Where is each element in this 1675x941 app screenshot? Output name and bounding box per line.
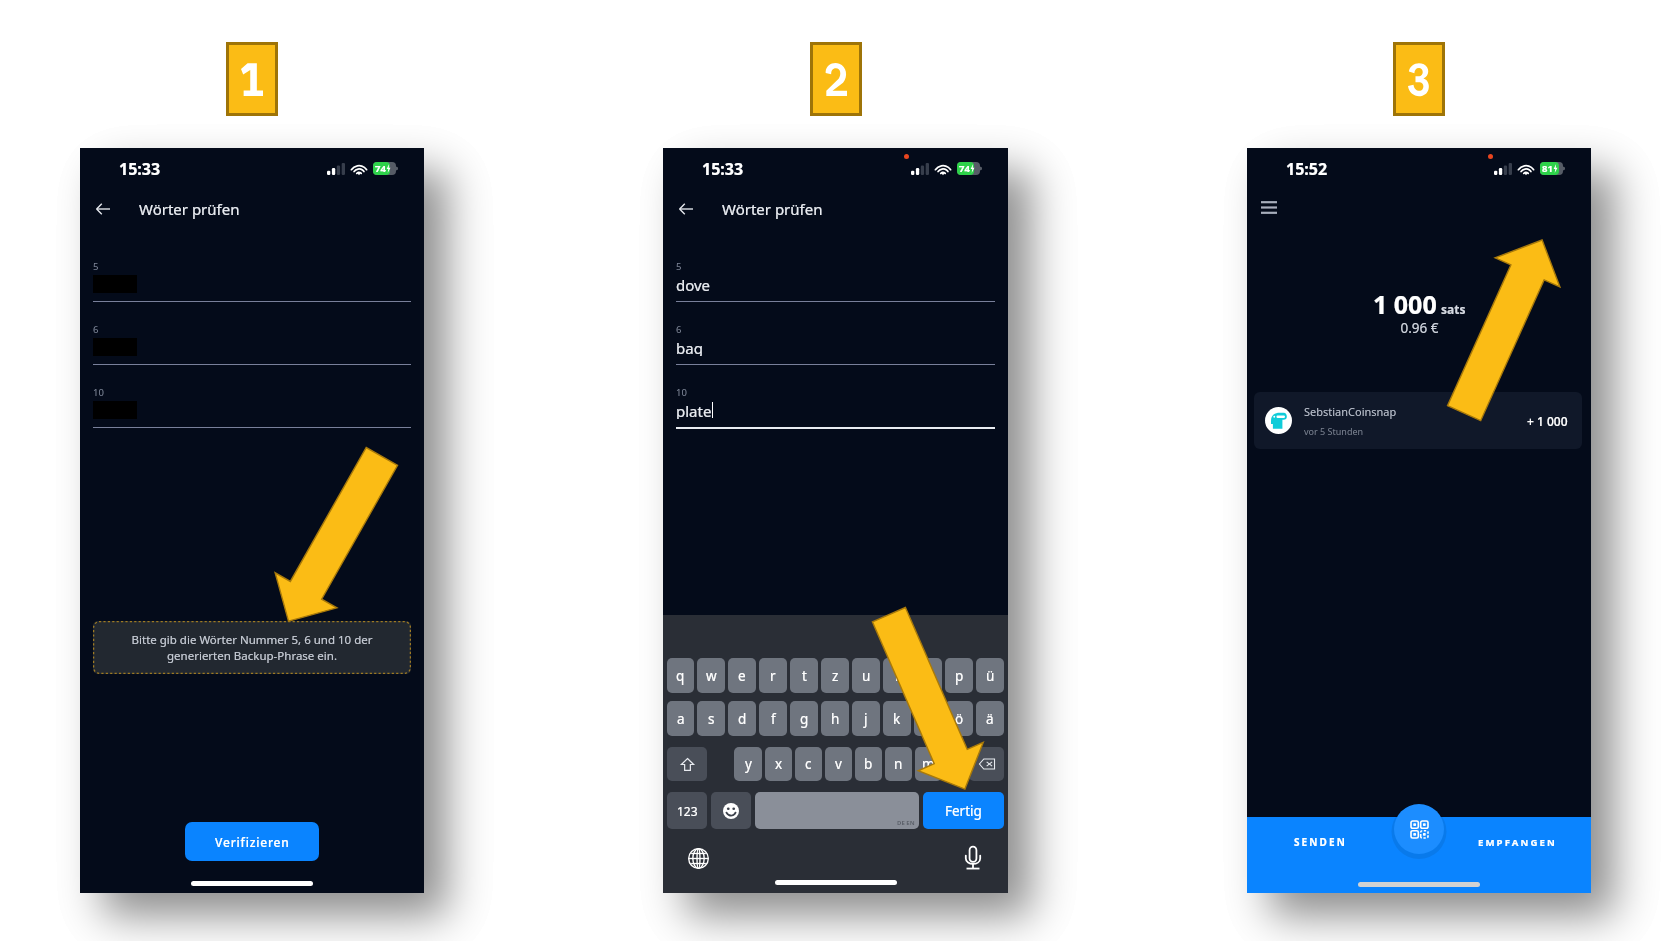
staticText: 6 [676, 323, 682, 335]
button[interactable]: t [790, 658, 818, 693]
staticText: Bitte gib die Wörter Nummer 5, 6 und 10 … [93, 632, 411, 663]
staticText: DE EN [897, 819, 915, 827]
button[interactable]: k [883, 701, 911, 736]
staticText: r [770, 667, 776, 685]
staticText: f [771, 710, 776, 728]
staticText: sats [1441, 301, 1466, 317]
staticText: + 1 000 [1527, 413, 1568, 429]
button[interactable]: Change language [685, 845, 711, 871]
staticText: SebstianCoinsnap [1304, 404, 1397, 419]
button[interactable]: f [759, 701, 787, 736]
button[interactable]: w [697, 658, 725, 693]
staticText: q [676, 667, 685, 685]
button[interactable]: u [852, 658, 880, 693]
button[interactable]: Menu [1254, 192, 1284, 222]
button[interactable]: Fertig [923, 792, 1004, 829]
staticText: bag [676, 338, 703, 356]
button[interactable]: ö [945, 701, 973, 736]
staticText: d [738, 710, 747, 728]
button[interactable]: Verifizieren [185, 822, 319, 861]
button[interactable]: Emoji [711, 792, 751, 829]
button[interactable]: x [765, 747, 792, 781]
button[interactable]: o [914, 658, 942, 693]
staticText: SENDEN [1294, 835, 1347, 849]
button[interactable]: l [914, 701, 942, 736]
staticText: u [862, 667, 871, 685]
staticText: g [800, 710, 809, 728]
button[interactable]: e [728, 658, 756, 693]
staticText: plate [676, 401, 712, 419]
staticText: 6 [93, 323, 99, 335]
staticText: EMPFANGEN [1478, 836, 1557, 849]
staticText: Fertig [945, 802, 982, 820]
button[interactable]: q [667, 658, 694, 693]
staticText: Verifizieren [215, 834, 290, 850]
staticText: 123 [677, 803, 698, 819]
staticText: b [864, 755, 873, 773]
staticText: dove [676, 275, 711, 293]
staticText: Wörter prüfen [722, 199, 823, 219]
staticText: v [835, 755, 842, 773]
staticText: ö [955, 710, 964, 728]
staticText: w [706, 667, 717, 685]
staticText: t [802, 667, 807, 685]
staticText: 10 [676, 386, 687, 398]
staticText: ü [986, 667, 995, 685]
staticText: m [922, 755, 935, 773]
button[interactable]: r [759, 658, 787, 693]
button[interactable]: y [734, 747, 762, 781]
button[interactable]: m [915, 747, 942, 781]
staticText: s [708, 710, 715, 728]
staticText: 15:33 [702, 158, 744, 180]
button[interactable]: j [852, 701, 880, 736]
button[interactable]: v [825, 747, 852, 781]
staticText: j [864, 710, 868, 728]
staticText: 74 [959, 162, 970, 175]
button[interactable]: Space [755, 792, 919, 829]
staticText: Wörter prüfen [139, 199, 240, 219]
button[interactable]: s [697, 701, 725, 736]
staticText: ä [986, 710, 994, 728]
button[interactable]: n [885, 747, 912, 781]
staticText: y [745, 755, 752, 773]
staticText: 74 [375, 162, 386, 175]
staticText: a [677, 710, 685, 728]
button[interactable]: c [795, 747, 822, 781]
button[interactable]: d [728, 701, 756, 736]
button[interactable]: SebstianCoinsnap [1254, 392, 1582, 449]
button[interactable]: Back [88, 194, 118, 224]
staticText: e [738, 667, 746, 685]
button[interactable]: SENDEN [1247, 828, 1393, 856]
staticText: z [832, 667, 839, 685]
staticText: 5 [93, 260, 99, 272]
button[interactable]: g [790, 701, 818, 736]
button[interactable]: ä [976, 701, 1004, 736]
staticText: 10 [93, 386, 104, 398]
button[interactable]: Shift [667, 747, 707, 781]
button[interactable]: a [667, 701, 694, 736]
staticText: p [955, 667, 964, 685]
staticText: 15:52 [1286, 158, 1328, 180]
button[interactable]: 123 [667, 792, 707, 829]
staticText: 1 000 [1373, 287, 1437, 321]
staticText: 0.96 € [1400, 319, 1439, 337]
staticText: vor 5 Stunden [1304, 425, 1364, 437]
button[interactable]: z [821, 658, 849, 693]
staticText: 15:33 [119, 158, 161, 180]
staticText: h [831, 710, 840, 728]
staticText: o [924, 667, 933, 685]
button[interactable]: Voice input [960, 845, 986, 871]
button[interactable]: p [945, 658, 973, 693]
button[interactable]: h [821, 701, 849, 736]
staticText: c [805, 755, 812, 773]
button[interactable]: Backspace [969, 747, 1004, 781]
button[interactable]: ü [976, 658, 1004, 693]
button[interactable]: i [883, 658, 911, 693]
button[interactable]: Back [671, 194, 701, 224]
button[interactable]: b [855, 747, 882, 781]
staticText: i [895, 667, 899, 685]
button[interactable]: Scan QR code [1394, 804, 1444, 854]
staticText: 81 [1542, 162, 1553, 175]
button[interactable]: EMPFANGEN [1444, 828, 1591, 856]
